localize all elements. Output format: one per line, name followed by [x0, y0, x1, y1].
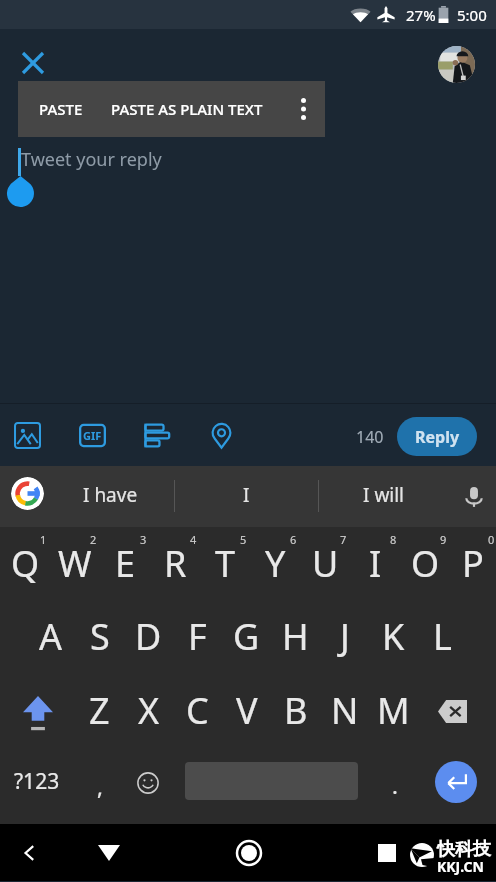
- button[interactable]: Emoji: [124, 745, 172, 820]
- button[interactable]: I will: [319, 464, 449, 525]
- button[interactable]: Reply: [397, 417, 477, 456]
- button[interactable]: Add GIF: [70, 413, 114, 457]
- staticText: 1: [40, 532, 47, 547]
- button[interactable]: Hide keyboard: [86, 824, 132, 881]
- staticText: 0: [488, 532, 495, 547]
- staticText: ,: [97, 771, 103, 801]
- button[interactable]: Close: [14, 44, 52, 82]
- staticText: W: [58, 539, 92, 588]
- button[interactable]: C: [173, 673, 222, 747]
- button[interactable]: Add poll: [134, 413, 178, 457]
- button[interactable]: Home: [226, 824, 272, 881]
- staticText: Y: [265, 539, 286, 588]
- staticText: 6: [290, 532, 297, 547]
- staticText: 3: [140, 532, 147, 547]
- staticText: D: [135, 612, 162, 661]
- staticText: X: [138, 686, 160, 735]
- button[interactable]: I have: [46, 464, 174, 525]
- staticText: K: [382, 612, 405, 661]
- button[interactable]: X: [124, 673, 173, 747]
- staticText: H: [282, 612, 309, 661]
- staticText: L: [433, 612, 452, 661]
- staticText: F: [188, 612, 207, 661]
- staticText: 2: [90, 532, 97, 547]
- staticText: J: [340, 612, 350, 661]
- staticText: U: [312, 539, 339, 588]
- button[interactable]: J: [320, 599, 369, 673]
- staticText: 8: [390, 532, 397, 547]
- staticText: S: [90, 612, 110, 661]
- staticText: V: [236, 686, 258, 735]
- staticText: ?123: [14, 767, 60, 796]
- staticText: Reply: [415, 426, 460, 448]
- button[interactable]: I: [175, 464, 318, 525]
- staticText: I have: [83, 482, 138, 508]
- staticText: P: [462, 539, 484, 588]
- button[interactable]: Voice input: [452, 466, 496, 527]
- button[interactable]: S: [75, 599, 124, 673]
- staticText: GIF: [83, 428, 102, 443]
- button[interactable]: Recent apps: [364, 824, 410, 881]
- staticText: G: [233, 612, 260, 661]
- button[interactable]: V: [222, 673, 271, 747]
- button[interactable]: ?123: [0, 744, 74, 819]
- button[interactable]: PASTE: [30, 81, 92, 137]
- button[interactable]: PASTE AS PLAIN TEXT: [92, 81, 282, 137]
- staticText: C: [186, 686, 209, 735]
- button[interactable]: R: [150, 527, 200, 597]
- staticText: 140: [356, 426, 384, 448]
- staticText: Q: [11, 539, 40, 588]
- button[interactable]: Enter: [435, 761, 477, 803]
- button[interactable]: Add photo: [5, 413, 49, 457]
- button[interactable]: Backspace: [418, 673, 492, 747]
- button[interactable]: Z: [75, 673, 124, 747]
- button[interactable]: ,: [76, 749, 124, 824]
- staticText: B: [284, 686, 308, 735]
- button[interactable]: M: [369, 673, 418, 747]
- button[interactable]: Q: [0, 527, 50, 597]
- button[interactable]: .: [372, 749, 418, 824]
- staticText: 27%: [406, 5, 436, 25]
- button[interactable]: O: [400, 527, 450, 597]
- staticText: PASTE AS PLAIN TEXT: [111, 99, 263, 119]
- staticText: KKJ.CN: [437, 857, 484, 876]
- staticText: I: [243, 482, 250, 508]
- staticText: R: [164, 539, 187, 588]
- button[interactable]: Back: [7, 824, 53, 881]
- button[interactable]: Y: [250, 527, 300, 597]
- button[interactable]: A: [26, 599, 75, 673]
- staticText: T: [215, 539, 236, 588]
- button[interactable]: More options: [281, 81, 325, 137]
- button[interactable]: Shift: [0, 673, 75, 747]
- button[interactable]: U: [300, 527, 350, 597]
- staticText: M: [377, 686, 410, 735]
- staticText: Tweet your reply: [21, 147, 162, 172]
- staticText: 7: [340, 532, 347, 547]
- staticText: PASTE: [39, 99, 83, 119]
- button[interactable]: P: [450, 527, 496, 597]
- button[interactable]: F: [173, 599, 222, 673]
- button[interactable]: G: [222, 599, 271, 673]
- button[interactable]: T: [200, 527, 250, 597]
- staticText: N: [331, 686, 359, 735]
- staticText: 快科技: [437, 838, 491, 861]
- staticText: .: [392, 770, 398, 800]
- staticText: I will: [363, 482, 405, 508]
- button[interactable]: D: [124, 599, 173, 673]
- button[interactable]: Profile: [438, 46, 475, 83]
- staticText: 5: [240, 532, 247, 547]
- button[interactable]: W: [50, 527, 100, 597]
- button[interactable]: E: [100, 527, 150, 597]
- staticText: 5:00: [457, 5, 487, 25]
- staticText: 9: [440, 532, 447, 547]
- button[interactable]: B: [271, 673, 320, 747]
- button[interactable]: L: [418, 599, 467, 673]
- button[interactable]: Add location: [199, 413, 243, 457]
- button[interactable]: I: [350, 527, 400, 597]
- button[interactable]: Google: [11, 477, 44, 510]
- button[interactable]: N: [320, 673, 369, 747]
- staticText: O: [411, 539, 440, 588]
- button[interactable]: H: [271, 599, 320, 673]
- button[interactable]: K: [369, 599, 418, 673]
